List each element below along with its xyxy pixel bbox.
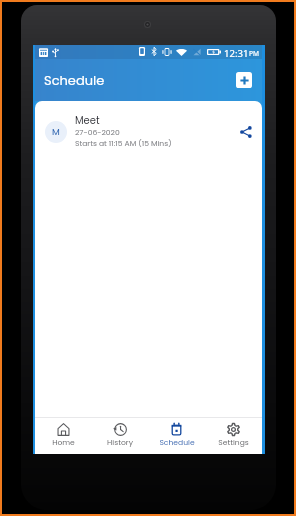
button[interactable]: Add schedule: [236, 72, 252, 88]
button[interactable]: History: [91, 418, 148, 452]
button[interactable]: Settings: [205, 418, 262, 452]
staticText: Settings: [218, 437, 249, 448]
staticText: PM: [249, 49, 259, 58]
staticText: Schedule: [44, 71, 105, 89]
staticText: M: [52, 126, 60, 139]
button[interactable]: M: [35, 101, 262, 173]
button[interactable]: Home: [35, 418, 91, 452]
staticText: Meet: [75, 113, 100, 127]
staticText: Starts at 11:15 AM (15 Mins): [75, 138, 172, 149]
staticText: Schedule: [159, 437, 195, 448]
staticText: 12:31: [224, 47, 249, 60]
staticText: Home: [52, 437, 75, 448]
staticText: History: [107, 437, 133, 448]
button[interactable]: Schedule: [148, 418, 205, 452]
button[interactable]: Share: [237, 123, 255, 141]
staticText: 27-06-2020: [75, 127, 120, 138]
